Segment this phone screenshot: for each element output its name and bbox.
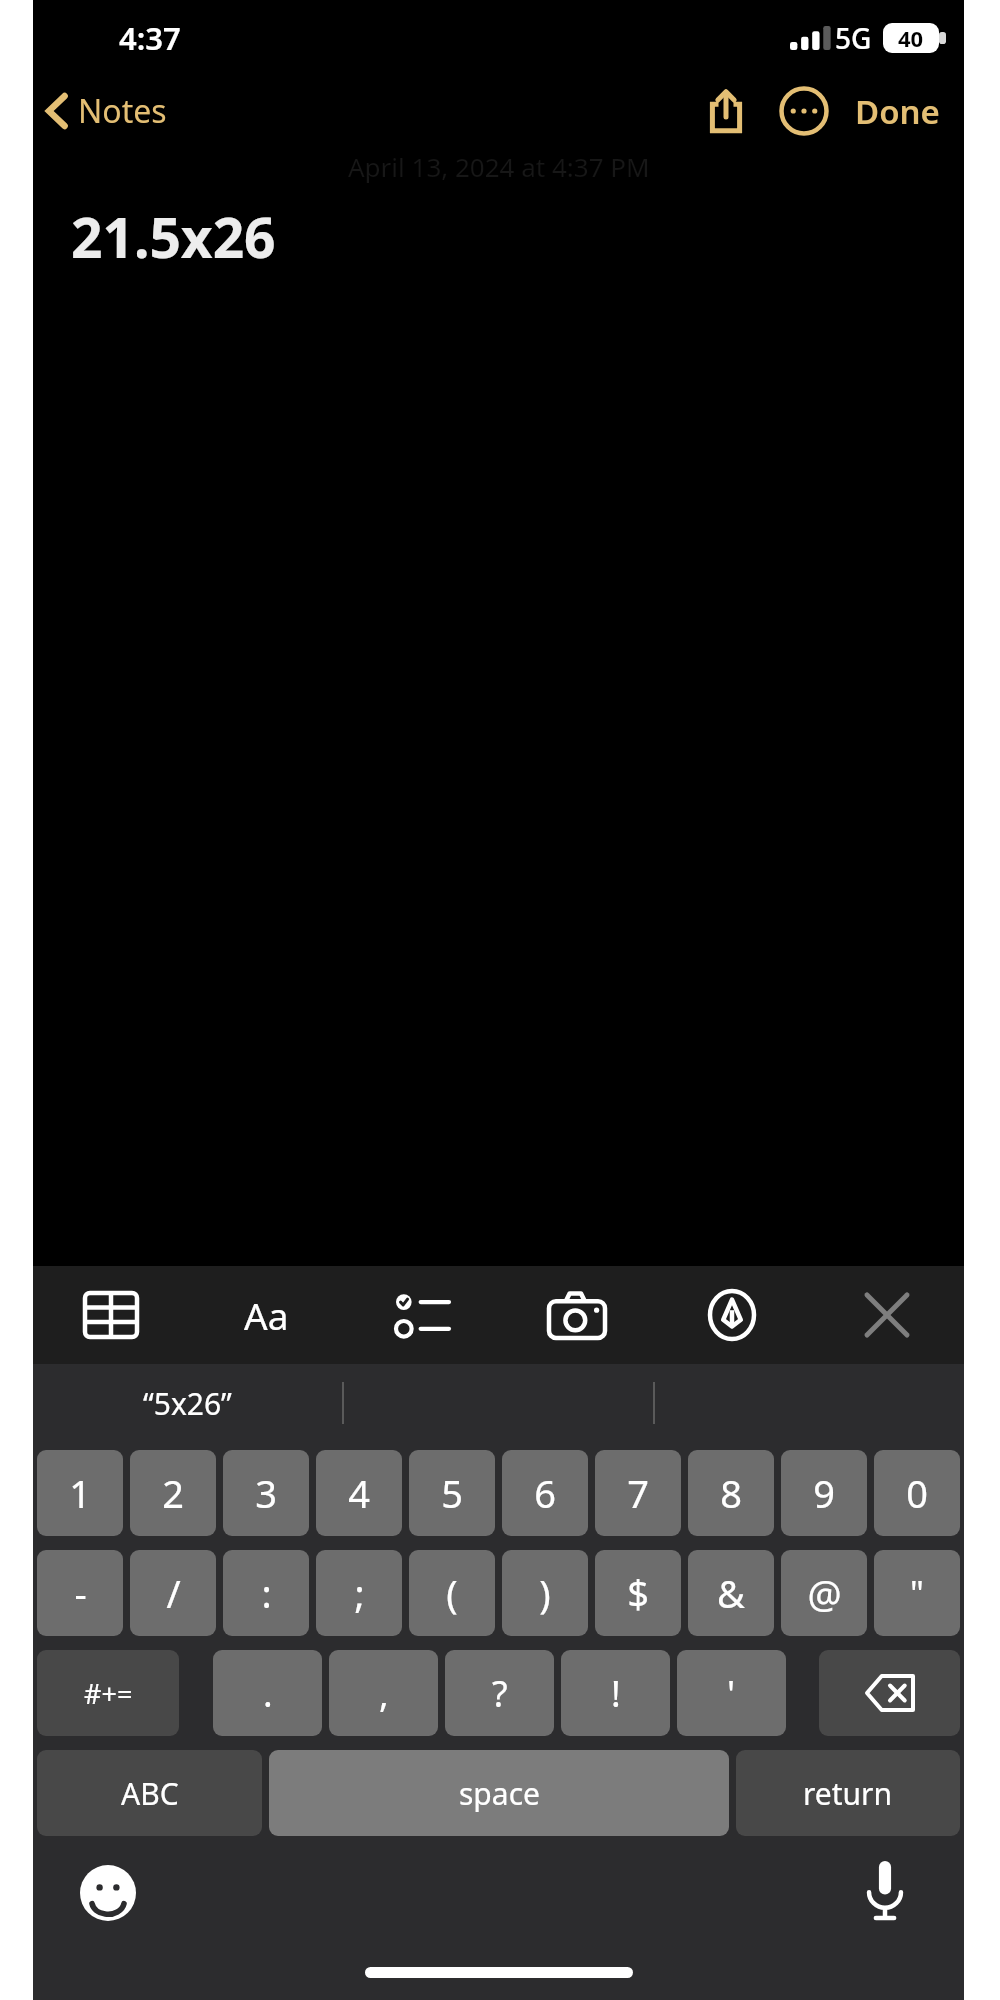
button[interactable]: Camera (499, 1266, 654, 1364)
button[interactable]: . (213, 1650, 322, 1736)
staticText: $ (627, 1567, 649, 1619)
staticText: ? (492, 1669, 508, 1718)
button[interactable]: 5 (409, 1450, 495, 1536)
button[interactable]: & (688, 1550, 774, 1636)
staticText: 6 (534, 1467, 556, 1519)
staticText: 2 (162, 1467, 184, 1519)
staticText: space (459, 1773, 540, 1814)
staticText: : (261, 1567, 272, 1619)
staticText: 21.5x26 (71, 199, 276, 274)
button[interactable]: Share (693, 78, 759, 144)
staticText: 4:37 (119, 17, 181, 59)
staticText: ) (539, 1567, 551, 1619)
staticText: April 13, 2024 at 4:37 PM (348, 149, 650, 184)
staticText: / (166, 1567, 181, 1619)
staticText: . (263, 1669, 273, 1718)
button[interactable]: 1 (37, 1450, 123, 1536)
button[interactable]: 8 (688, 1450, 774, 1536)
button[interactable]: " (874, 1550, 960, 1636)
staticText: ! (611, 1669, 621, 1718)
button[interactable]: More options (771, 78, 837, 144)
staticText: 4 (348, 1467, 370, 1519)
staticText: 5G (835, 19, 872, 57)
button[interactable]: Emoji (73, 1858, 143, 1928)
button[interactable]: Markup (654, 1266, 809, 1364)
button[interactable]: $ (595, 1550, 681, 1636)
staticText: 7 (627, 1467, 649, 1519)
button[interactable]: 3 (223, 1450, 309, 1536)
button[interactable]: Dictate (850, 1856, 920, 1926)
staticText: #+= (84, 1675, 133, 1712)
button[interactable]: 4 (316, 1450, 402, 1536)
button[interactable]: @ (781, 1550, 867, 1636)
button[interactable]: ABC (37, 1750, 262, 1836)
staticText: 3 (255, 1467, 277, 1519)
button[interactable]: Done (845, 79, 950, 144)
button[interactable]: 7 (595, 1450, 681, 1536)
button[interactable]: ) (502, 1550, 588, 1636)
staticText: - (74, 1567, 87, 1619)
button[interactable]: return (736, 1750, 960, 1836)
staticText: 40 (898, 23, 924, 53)
staticText: return (803, 1773, 893, 1814)
staticText: " (910, 1570, 924, 1616)
button[interactable]: #+= (37, 1650, 179, 1736)
staticText: , (379, 1669, 389, 1718)
button[interactable]: ' (677, 1650, 786, 1736)
staticText: Aa (244, 1290, 289, 1340)
button[interactable]: “5x26” (33, 1364, 342, 1442)
button[interactable]: Format (189, 1266, 344, 1364)
button[interactable]: space (269, 1750, 729, 1836)
staticText: ( (446, 1567, 458, 1619)
button[interactable]: 9 (781, 1450, 867, 1536)
button[interactable]: 6 (502, 1450, 588, 1536)
button[interactable]: ? (445, 1650, 554, 1736)
button[interactable]: 0 (874, 1450, 960, 1536)
staticText: 1 (69, 1467, 91, 1519)
button[interactable]: , (329, 1650, 438, 1736)
button[interactable]: Checklist (344, 1266, 499, 1364)
button[interactable]: - (37, 1550, 123, 1636)
button[interactable]: : (223, 1550, 309, 1636)
staticText: “5x26” (143, 1383, 232, 1424)
button[interactable]: Table (33, 1266, 189, 1364)
staticText: Notes (78, 89, 167, 133)
button[interactable]: / (130, 1550, 216, 1636)
staticText: & (717, 1567, 745, 1619)
staticText: ' (727, 1669, 736, 1718)
staticText: @ (807, 1567, 842, 1619)
staticText: ; (354, 1567, 365, 1619)
button[interactable]: ; (316, 1550, 402, 1636)
staticText: 5 (441, 1467, 463, 1519)
button[interactable]: 2 (130, 1450, 216, 1536)
button[interactable]: ! (561, 1650, 670, 1736)
button[interactable]: Close (809, 1266, 964, 1364)
staticText: Done (855, 89, 940, 134)
staticText: 8 (720, 1467, 742, 1519)
staticText: ABC (121, 1773, 179, 1814)
staticText: 0 (906, 1467, 928, 1519)
button[interactable]: ( (409, 1550, 495, 1636)
button[interactable]: Backspace (819, 1650, 960, 1736)
staticText: 9 (813, 1467, 835, 1519)
button[interactable]: Notes (33, 83, 179, 139)
